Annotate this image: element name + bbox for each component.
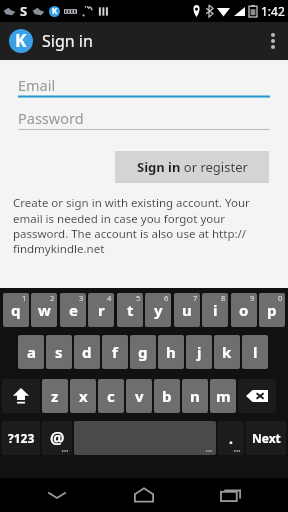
- staticText: l: [253, 342, 258, 362]
- staticText: s: [55, 342, 63, 362]
- staticText: K: [15, 29, 27, 53]
- button[interactable]: p: [259, 293, 285, 327]
- button[interactable]: w: [31, 293, 57, 327]
- staticText: 6: [164, 293, 169, 303]
- button[interactable]: h: [158, 335, 184, 369]
- button[interactable]: u: [174, 293, 200, 327]
- staticText: t: [127, 300, 134, 320]
- button[interactable]: Shift: [2, 379, 40, 413]
- staticText: b: [162, 386, 172, 406]
- button[interactable]: k: [214, 335, 240, 369]
- staticText: e: [69, 300, 78, 320]
- button[interactable]: Recent apps: [201, 478, 261, 512]
- button[interactable]: i: [202, 293, 228, 327]
- staticText: 8: [221, 293, 226, 303]
- button[interactable]: e: [60, 293, 86, 327]
- button[interactable]: c: [98, 379, 124, 413]
- button[interactable]: d: [74, 335, 100, 369]
- button[interactable]: K: [9, 29, 93, 53]
- staticText: .: [229, 429, 233, 448]
- button[interactable]: More options: [258, 22, 288, 60]
- staticText: S: [20, 2, 28, 20]
- staticText: n: [190, 386, 200, 406]
- button[interactable]: v: [126, 379, 152, 413]
- staticText: r: [98, 300, 105, 320]
- button[interactable]: g: [130, 335, 156, 369]
- button[interactable]: y: [145, 293, 171, 327]
- staticText: 7: [193, 293, 198, 303]
- button[interactable]: a: [18, 335, 44, 369]
- staticText: 4: [107, 293, 112, 303]
- button[interactable]: j: [186, 335, 212, 369]
- staticText: Next: [252, 430, 281, 446]
- button[interactable]: z: [42, 379, 68, 413]
- button[interactable]: l: [242, 335, 268, 369]
- staticText: f: [112, 342, 118, 362]
- button[interactable]: Email: [18, 74, 270, 99]
- staticText: i: [213, 300, 218, 320]
- staticText: y: [154, 300, 163, 320]
- staticText: Sign in or register: [137, 158, 248, 176]
- button[interactable]: x: [70, 379, 96, 413]
- staticText: @: [50, 427, 65, 449]
- staticText: u: [182, 300, 192, 320]
- button[interactable]: n: [182, 379, 208, 413]
- button[interactable]: Password: [18, 107, 270, 132]
- staticText: K: [52, 6, 58, 17]
- staticText: g: [138, 342, 148, 362]
- button[interactable]: b: [154, 379, 180, 413]
- staticText: p: [267, 300, 277, 320]
- staticText: 0: [278, 293, 283, 303]
- staticText: z: [51, 386, 59, 406]
- staticText: 5: [136, 293, 141, 303]
- staticText: 1:42: [261, 3, 285, 19]
- staticText: q: [11, 300, 21, 320]
- button[interactable]: r: [88, 293, 114, 327]
- staticText: 1: [22, 293, 27, 303]
- staticText: c: [107, 386, 115, 406]
- button[interactable]: Next: [246, 421, 286, 455]
- staticText: h: [166, 342, 176, 362]
- staticText: Create or sign in with existing account.…: [13, 195, 275, 256]
- button[interactable]: o: [231, 293, 257, 327]
- staticText: d: [82, 342, 92, 362]
- staticText: o: [239, 300, 249, 320]
- button[interactable]: q: [3, 293, 29, 327]
- staticText: 3: [79, 293, 84, 303]
- staticText: v: [135, 386, 144, 406]
- button[interactable]: @: [42, 421, 72, 455]
- button[interactable]: ?123: [2, 421, 40, 455]
- button[interactable]: Backspace: [238, 379, 276, 413]
- button[interactable]: Home: [114, 478, 174, 512]
- button[interactable]: s: [46, 335, 72, 369]
- staticText: a: [27, 342, 36, 362]
- staticText: ?123: [8, 430, 35, 446]
- staticText: Password: [18, 108, 84, 128]
- staticText: 2: [50, 293, 55, 303]
- staticText: j: [197, 342, 202, 362]
- button[interactable]: Back: [27, 478, 87, 512]
- staticText: k: [222, 342, 232, 362]
- staticText: Email: [18, 75, 56, 95]
- staticText: m: [216, 386, 231, 406]
- button[interactable]: .: [218, 421, 244, 455]
- button[interactable]: Space: [74, 421, 216, 455]
- staticText: Sign in: [42, 30, 93, 52]
- button[interactable]: Sign in or register: [115, 151, 269, 183]
- button[interactable]: m: [210, 379, 236, 413]
- staticText: 9: [250, 293, 255, 303]
- button[interactable]: t: [117, 293, 143, 327]
- staticText: w: [38, 300, 51, 320]
- staticText: x: [79, 386, 88, 406]
- button[interactable]: f: [102, 335, 128, 369]
